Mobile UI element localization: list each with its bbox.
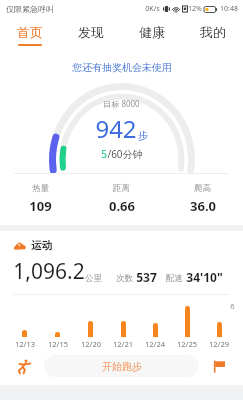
button[interactable]: 首页	[0, 18, 60, 51]
staticText: 12/13	[15, 339, 35, 348]
staticText: 配速	[166, 273, 183, 284]
button[interactable]: 健康	[121, 18, 182, 51]
button[interactable]: 开始跑步	[44, 355, 199, 377]
staticText: 0K/s	[145, 4, 160, 14]
button[interactable]: 12/25	[171, 306, 203, 348]
staticText: 942	[95, 112, 137, 145]
staticText: 12/20	[81, 339, 101, 348]
staticText: 34'10"	[186, 269, 223, 285]
button[interactable]: 热量	[0, 183, 81, 215]
staticText: 距离	[113, 183, 130, 194]
staticText: 发现	[78, 24, 104, 40]
staticText: 公里	[85, 273, 102, 284]
staticText: 6	[230, 301, 235, 311]
staticText: 我的	[200, 24, 226, 40]
button[interactable]: 12/29	[203, 306, 235, 348]
button[interactable]: Running activity	[12, 354, 36, 378]
staticText: 10:48	[220, 4, 238, 14]
staticText: 仅限紧急呼叫	[6, 4, 54, 14]
staticText: 首页	[17, 24, 43, 40]
staticText: 目标 8000	[103, 98, 140, 109]
button[interactable]: 您还有抽奖机会未使用	[0, 61, 243, 74]
staticText: 次数	[116, 273, 133, 284]
button[interactable]: 发现	[60, 18, 121, 51]
staticText: 运动	[31, 239, 52, 252]
button[interactable]: 距离	[81, 183, 162, 215]
staticText: 热量	[32, 183, 49, 194]
staticText: 1,096.2	[13, 257, 85, 286]
staticText: 12/24	[145, 339, 165, 348]
staticText: 12/25	[177, 339, 197, 348]
staticText: 36.0	[190, 197, 216, 215]
staticText: 5	[101, 147, 107, 161]
button[interactable]: Goals	[207, 354, 231, 378]
staticText: 109	[29, 197, 52, 215]
button[interactable]: 12/24	[139, 306, 171, 348]
staticText: 12%	[188, 4, 202, 14]
button[interactable]: 12/13	[8, 306, 41, 348]
staticText: 537	[136, 269, 157, 285]
staticText: 12/15	[48, 339, 68, 348]
button[interactable]: 爬高	[162, 183, 243, 215]
button[interactable]: 12/15	[41, 306, 74, 348]
button[interactable]: 12/21	[107, 306, 139, 348]
button[interactable]: 我的	[182, 18, 243, 51]
button[interactable]: 运动	[13, 239, 52, 252]
staticText: 0.66	[109, 197, 135, 215]
staticText: 健康	[139, 24, 165, 40]
staticText: 12/29	[209, 339, 229, 348]
staticText: /60分钟	[107, 147, 143, 161]
staticText: 开始跑步	[102, 360, 142, 373]
staticText: 步	[138, 129, 148, 142]
button[interactable]: 12/20	[74, 306, 107, 348]
staticText: 12/21	[113, 339, 133, 348]
staticText: 爬高	[194, 183, 211, 194]
staticText: 您还有抽奖机会未使用	[72, 61, 172, 74]
